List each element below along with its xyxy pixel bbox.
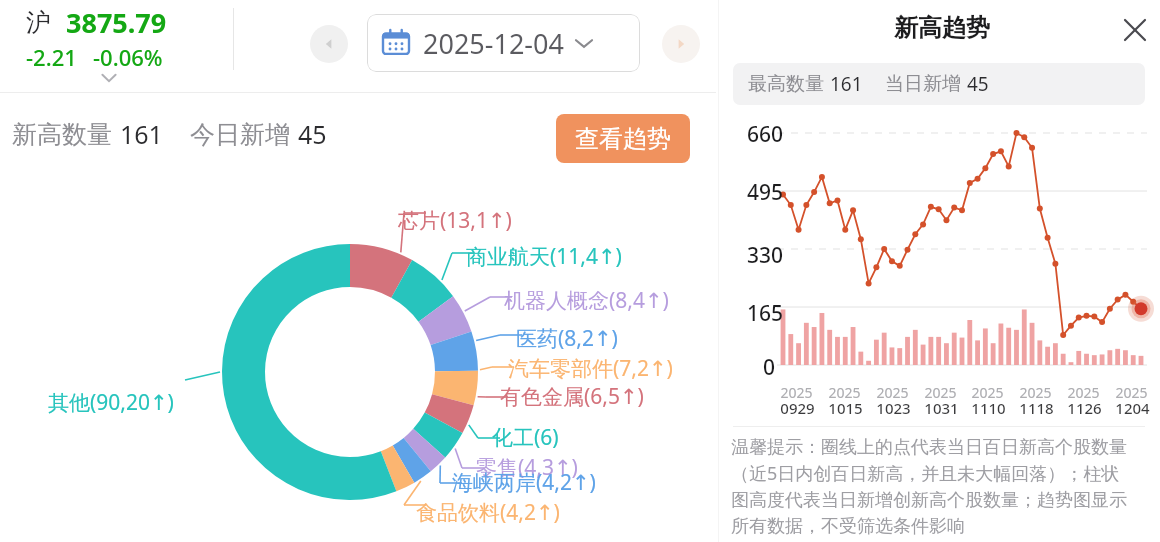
staticText: 660 bbox=[747, 120, 784, 149]
staticText: 2025 bbox=[828, 383, 861, 402]
button[interactable]: Next day bbox=[662, 25, 700, 63]
button[interactable]: Expand index bbox=[98, 70, 120, 86]
staticText: 机器人概念(8,4↑) bbox=[504, 286, 669, 315]
staticText: 汽车零部件(7,2↑) bbox=[508, 354, 673, 383]
staticText: 495 bbox=[747, 178, 784, 207]
staticText: 芯片(13,1↑) bbox=[398, 206, 512, 235]
staticText: 有色金属(6,5↑) bbox=[500, 382, 644, 411]
staticText: 最高数量 bbox=[748, 72, 824, 96]
staticText: 1031 bbox=[924, 398, 959, 418]
staticText: 2025 bbox=[780, 383, 813, 402]
button[interactable]: Previous day bbox=[310, 25, 348, 63]
staticText: 2025 bbox=[924, 383, 957, 402]
staticText: 2025 bbox=[876, 383, 909, 402]
staticText: -2.21 bbox=[26, 42, 77, 72]
staticText: 食品饮料(4,2↑) bbox=[416, 498, 560, 527]
staticText: 1204 bbox=[1115, 398, 1150, 418]
staticText: -0.06% bbox=[93, 42, 163, 72]
staticText: 2025 bbox=[1067, 383, 1100, 402]
button[interactable]: 2025-12-04 bbox=[367, 14, 640, 72]
staticText: 45 bbox=[298, 117, 327, 151]
staticText: 1118 bbox=[1019, 398, 1054, 418]
staticText: 今日新增 bbox=[190, 119, 290, 150]
staticText: 161 bbox=[830, 71, 863, 97]
staticText: 0 bbox=[763, 353, 776, 382]
staticText: 161 bbox=[120, 117, 163, 151]
staticText: 3875.79 bbox=[66, 4, 167, 41]
staticText: 330 bbox=[747, 241, 784, 270]
staticText: 2025-12-04 bbox=[423, 25, 564, 62]
staticText: 2025 bbox=[971, 383, 1004, 402]
staticText: 其他(90,20↑) bbox=[48, 388, 174, 417]
staticText: 2025 bbox=[1019, 383, 1052, 402]
staticText: 海峡两岸(4,2↑) bbox=[452, 468, 596, 497]
staticText: 0929 bbox=[780, 398, 815, 418]
staticText: 2025 bbox=[1115, 383, 1148, 402]
button[interactable]: 查看趋势 bbox=[556, 114, 690, 163]
staticText: 1015 bbox=[828, 398, 863, 418]
staticText: 1023 bbox=[876, 398, 911, 418]
staticText: 医药(8,2↑) bbox=[516, 324, 618, 353]
staticText: 165 bbox=[747, 299, 784, 328]
button[interactable]: 最高数量 bbox=[733, 63, 1145, 105]
staticText: 零售(4,3↑) bbox=[476, 453, 578, 482]
staticText: 沪 bbox=[26, 7, 51, 38]
staticText: 商业航天(11,4↑) bbox=[466, 242, 622, 271]
staticText: 温馨提示：圈线上的点代表当日百日新高个股数量 （近5日内创百日新高，并且未大幅回… bbox=[731, 436, 1156, 538]
staticText: 1110 bbox=[971, 398, 1006, 418]
staticText: 查看趋势 bbox=[575, 124, 671, 154]
staticText: 1126 bbox=[1067, 398, 1102, 418]
staticText: 45 bbox=[967, 71, 989, 97]
staticText: 化工(6) bbox=[492, 423, 559, 452]
staticText: 当日新增 bbox=[885, 72, 961, 96]
staticText: 新高趋势 bbox=[894, 13, 990, 43]
button[interactable]: Close bbox=[1115, 10, 1155, 50]
staticText: 新高数量 bbox=[12, 119, 112, 150]
